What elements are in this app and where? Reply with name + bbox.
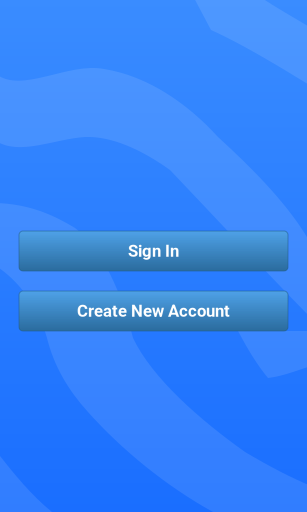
- staticText: Create New Account: [77, 301, 230, 321]
- staticText: Sign In: [128, 241, 179, 261]
- button[interactable]: Create New Account: [19, 291, 288, 331]
- button[interactable]: Sign In: [19, 231, 288, 271]
